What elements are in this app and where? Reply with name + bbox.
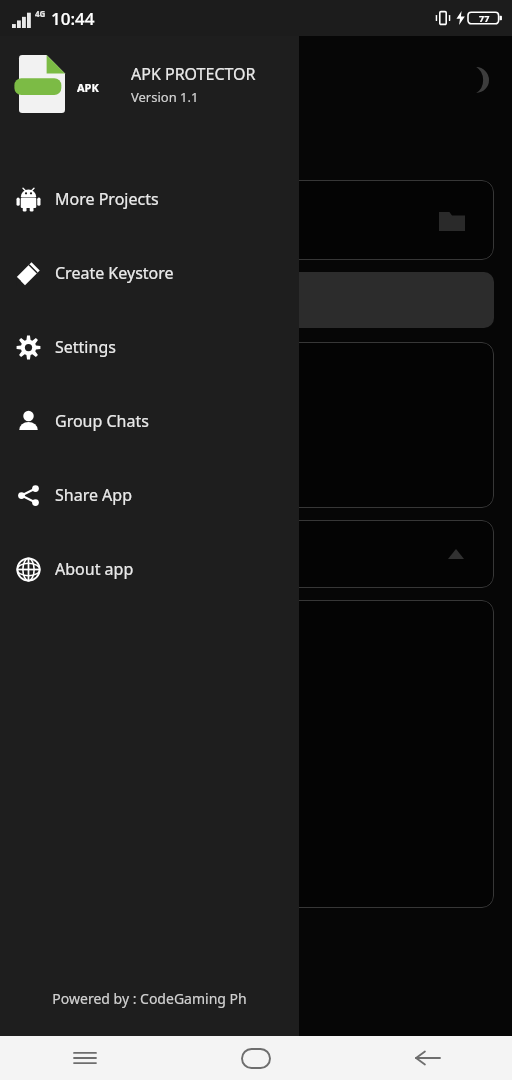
staticText: Version 1.1 xyxy=(131,88,199,106)
staticText: 4G xyxy=(35,8,46,19)
staticText: Settings xyxy=(55,336,116,358)
button[interactable]: Home xyxy=(170,1036,341,1080)
staticText: 10:44 xyxy=(51,7,95,30)
staticText: Create Keystore xyxy=(55,262,174,284)
button[interactable]: Browse files xyxy=(432,200,472,240)
staticText: APK PROTECTOR xyxy=(131,63,256,85)
staticText: APK xyxy=(77,80,99,95)
button[interactable]: PICK APK xyxy=(18,272,494,328)
staticText: 77 xyxy=(479,12,490,24)
staticText: About app xyxy=(55,558,134,580)
staticText: Group Chats xyxy=(55,410,149,432)
button[interactable]: About app xyxy=(0,532,299,606)
button[interactable]: Back xyxy=(341,1036,512,1080)
button[interactable]: Collapse xyxy=(438,536,474,572)
button[interactable]: More Projects xyxy=(0,162,299,236)
button[interactable]: Group Chats xyxy=(0,384,299,458)
button[interactable]: Settings xyxy=(0,310,299,384)
button[interactable]: Create Keystore xyxy=(0,236,299,310)
staticText: More Projects xyxy=(55,188,159,210)
staticText: Share App xyxy=(55,484,133,506)
button[interactable]: Toggle dark mode xyxy=(454,58,498,102)
button[interactable]: Share App xyxy=(0,458,299,532)
button[interactable]: APK xyxy=(0,36,299,132)
button[interactable]: Recent apps xyxy=(0,1036,170,1080)
staticText: Powered by : CodeGaming Ph xyxy=(0,989,299,1008)
